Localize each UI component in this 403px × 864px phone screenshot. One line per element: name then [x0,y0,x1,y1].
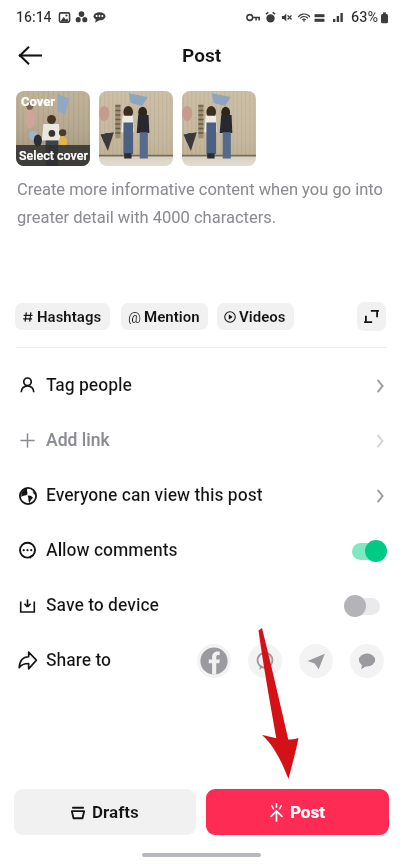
staticText: Create more informative content when you… [17,180,391,227]
staticText: Add link [46,430,110,451]
button[interactable]: Save to device [0,578,403,633]
staticText: Tag people [46,375,132,396]
staticText: Select cover [19,148,88,163]
staticText: Share to [46,650,112,671]
button[interactable]: Hashtags [15,303,110,330]
button[interactable]: @ [121,303,208,330]
button[interactable]: Share to Telegram [299,644,333,678]
staticText: Cover [21,94,56,109]
button[interactable]: Add link [0,413,403,468]
staticText: Post [182,44,222,66]
button[interactable]: Back [13,38,47,72]
button[interactable]: Videos [217,303,294,330]
staticText: 63% [351,9,379,26]
button[interactable]: Post [206,789,389,835]
staticText: Hashtags [37,308,102,326]
button[interactable]: Share to WhatsApp [248,644,282,678]
staticText: Mention [144,308,200,326]
button[interactable]: Share to Facebook [197,644,231,678]
button[interactable]: Share to Messages [350,644,384,678]
button[interactable]: Allow comments, on [344,539,387,563]
staticText: 16:14 [16,9,52,25]
button[interactable]: Save to device, off [344,594,387,618]
button[interactable] [99,91,173,166]
button[interactable]: Everyone can view this post [0,468,403,523]
staticText: Post [290,802,325,822]
button[interactable]: Drafts [14,789,196,835]
staticText: Allow comments [46,540,178,561]
button[interactable]: Tag people [0,358,403,413]
staticText: Save to device [46,595,159,616]
button[interactable]: Cover [16,91,90,166]
staticText: Drafts [92,802,139,822]
staticText: Everyone can view this post [46,485,263,506]
button[interactable] [182,91,256,166]
staticText: Videos [239,308,286,326]
button[interactable]: Allow comments [0,523,403,578]
button[interactable]: Expand editor [357,302,386,331]
staticText: @ [128,310,141,324]
